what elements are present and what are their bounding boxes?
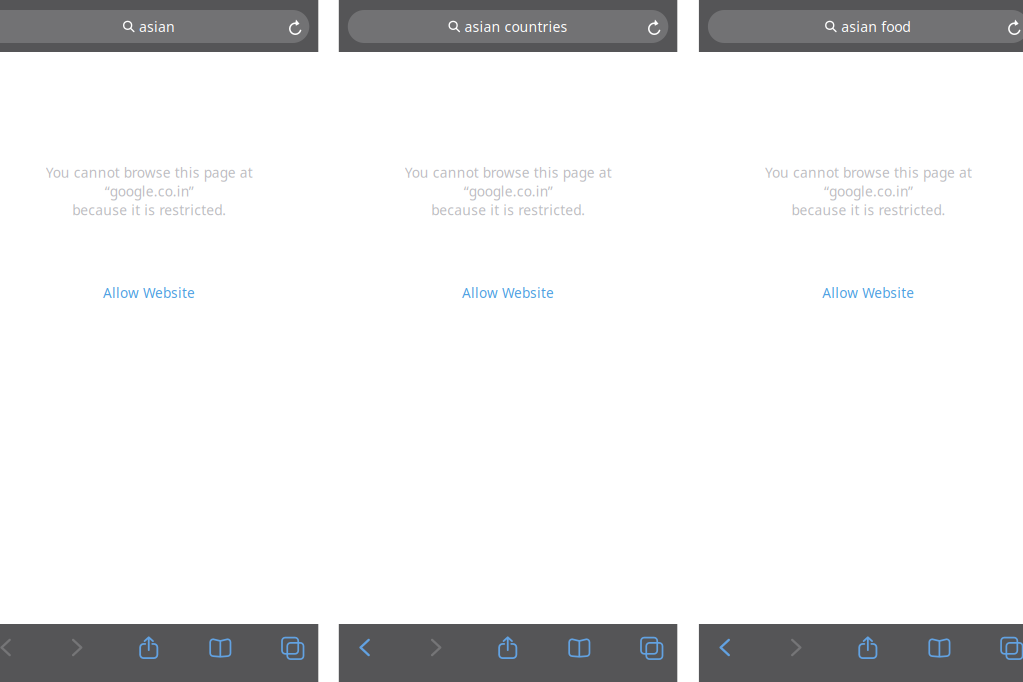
button[interactable]: Forward [56, 624, 98, 682]
button[interactable]: Back [0, 624, 27, 682]
button[interactable]: Allow Website [699, 275, 1023, 310]
staticText: You cannot browse this page at “google.c… [405, 163, 612, 219]
button[interactable]: Bookmarks [199, 624, 241, 682]
staticText: You cannot browse this page at “google.c… [765, 163, 972, 219]
staticText: Allow Website [822, 283, 914, 302]
button[interactable]: Share [847, 624, 889, 682]
staticText: Allow Website [462, 283, 554, 302]
button[interactable]: Bookmarks [558, 624, 600, 682]
button[interactable]: Share [128, 624, 170, 682]
staticText: Allow Website [103, 283, 195, 302]
button[interactable]: Back [704, 624, 746, 682]
staticText: asian food [841, 17, 911, 36]
button[interactable]: Forward [415, 624, 457, 682]
staticText: You cannot browse this page at “google.c… [45, 163, 252, 219]
button[interactable]: Bookmarks [918, 624, 960, 682]
button[interactable]: Tabs [990, 624, 1023, 682]
staticText: asian countries [465, 17, 568, 36]
button[interactable]: Forward [775, 624, 817, 682]
button[interactable]: Tabs [630, 624, 672, 682]
button[interactable]: asian countries [348, 10, 668, 43]
button[interactable]: Tabs [271, 624, 313, 682]
button[interactable]: Share [487, 624, 529, 682]
button[interactable]: asian [0, 10, 309, 43]
button[interactable]: asian food [708, 10, 1023, 43]
button[interactable]: Allow Website [339, 275, 677, 310]
button[interactable]: Back [344, 624, 386, 682]
button[interactable]: Allow Website [0, 275, 318, 310]
staticText: asian [139, 17, 175, 36]
